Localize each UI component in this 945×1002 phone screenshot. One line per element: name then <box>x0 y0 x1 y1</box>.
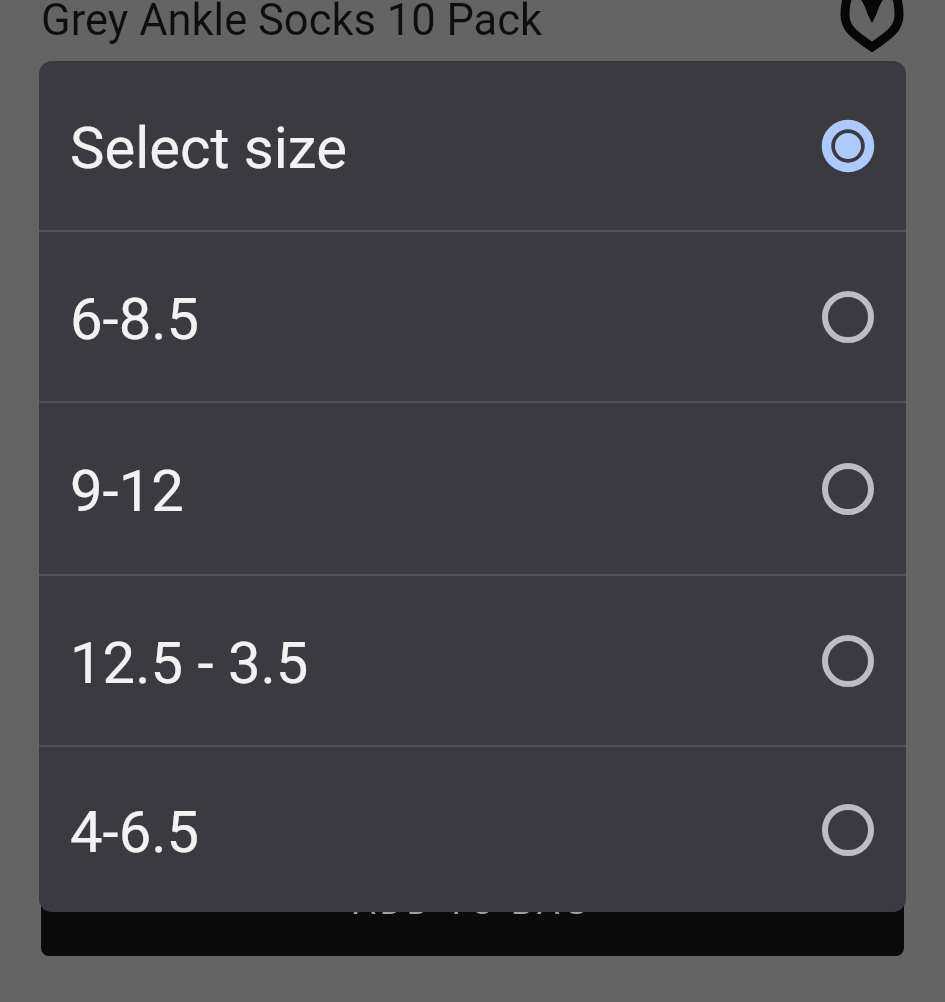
button[interactable]: ADD TO BAG <box>41 846 904 956</box>
button[interactable]: 12.5 - 3.5 <box>39 576 906 745</box>
button[interactable]: 4-6.5 <box>39 747 906 912</box>
staticText: 9-12 <box>70 457 184 525</box>
staticText: ADD TO BAG <box>353 882 592 923</box>
button[interactable]: 9-12 <box>39 403 906 574</box>
staticText: 4-6.5 <box>70 798 200 866</box>
staticText: 12.5 - 3.5 <box>70 629 309 697</box>
button[interactable]: Favourite <box>830 0 914 60</box>
button[interactable]: 6-8.5 <box>39 232 906 401</box>
staticText: Grey Ankle Socks 10 Pack <box>41 0 543 46</box>
staticText: Select size <box>70 114 347 182</box>
staticText: 6-8.5 <box>70 285 200 353</box>
button[interactable]: Select size <box>39 61 906 230</box>
